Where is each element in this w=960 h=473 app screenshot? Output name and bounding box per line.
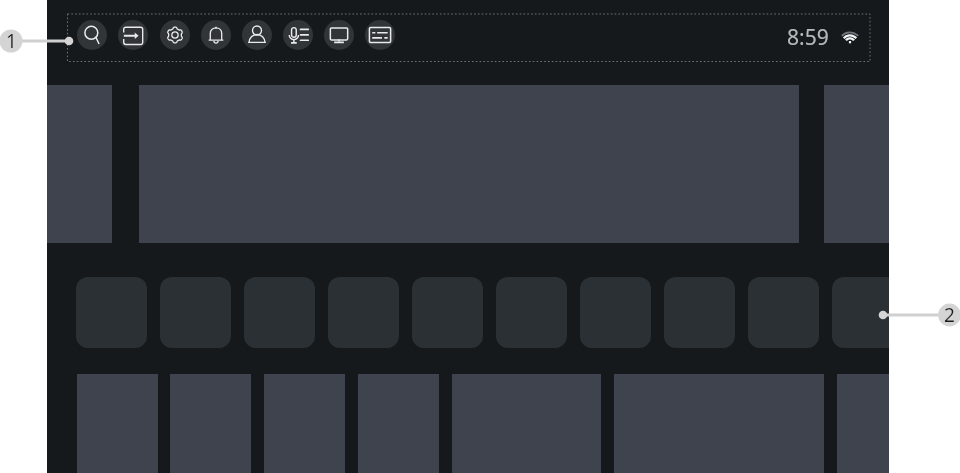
staticText: 8:59 — [787, 23, 829, 47]
button[interactable]: Captions — [365, 20, 395, 50]
button[interactable]: Screen — [324, 20, 354, 50]
button[interactable] — [412, 277, 483, 348]
button[interactable] — [496, 277, 567, 348]
button[interactable]: Search — [77, 20, 107, 50]
button[interactable]: Account — [242, 20, 272, 50]
button[interactable] — [244, 277, 315, 348]
button[interactable]: Settings — [160, 20, 190, 50]
button[interactable]: Notifications — [201, 20, 231, 50]
button[interactable] — [328, 277, 399, 348]
button[interactable]: Voice search — [283, 20, 313, 50]
button[interactable] — [748, 277, 819, 348]
button[interactable] — [580, 277, 651, 348]
staticText: 2 — [944, 302, 955, 326]
button[interactable]: Inputs — [118, 20, 148, 50]
button[interactable] — [664, 277, 735, 348]
button[interactable] — [76, 277, 147, 348]
button[interactable] — [160, 277, 231, 348]
staticText: 1 — [6, 28, 17, 52]
button[interactable] — [832, 277, 889, 348]
